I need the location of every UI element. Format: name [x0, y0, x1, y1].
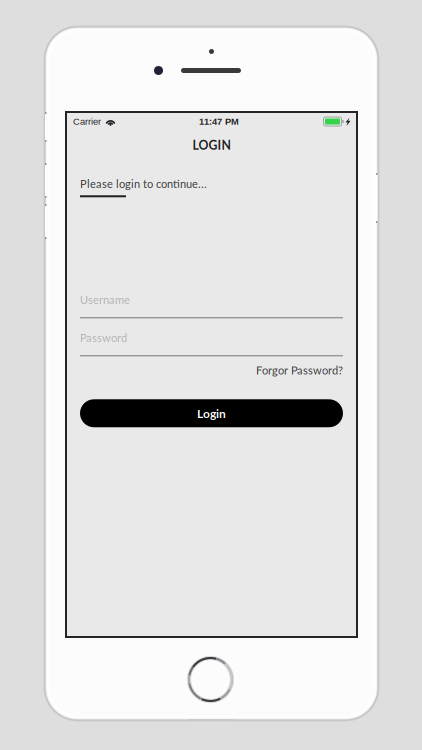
staticText: Username — [80, 293, 130, 306]
staticText: 11:47 PM — [199, 116, 239, 127]
staticText: Password — [80, 331, 127, 344]
staticText: Please login to continue... — [80, 177, 207, 190]
staticText: Forgor Password? — [256, 364, 343, 377]
staticText: Carrier — [73, 116, 101, 127]
button[interactable]: Forgor Password? — [256, 362, 343, 378]
staticText: Login — [197, 406, 226, 420]
button[interactable]: Login — [80, 399, 343, 427]
staticText: LOGIN — [192, 138, 230, 152]
